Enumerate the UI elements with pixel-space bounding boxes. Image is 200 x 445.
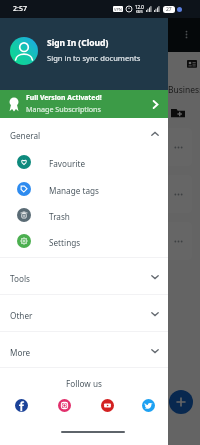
button[interactable]: Full Version Activated! xyxy=(0,90,168,118)
button[interactable]: Trash xyxy=(0,202,168,228)
staticText: VPN xyxy=(114,7,122,12)
button[interactable]: Facebook xyxy=(15,399,28,412)
staticText: General xyxy=(10,130,41,141)
staticText: KB/S xyxy=(136,10,143,14)
staticText: Settings xyxy=(49,237,81,248)
button[interactable]: Sign In (Cloud) xyxy=(0,18,168,90)
button[interactable]: Instagram xyxy=(58,399,71,412)
button[interactable]: More xyxy=(0,332,168,369)
staticText: Other xyxy=(10,310,33,321)
staticText: Follow us xyxy=(0,378,168,389)
staticText: 27 xyxy=(166,6,172,13)
button[interactable]: General xyxy=(0,118,168,149)
staticText: More xyxy=(10,347,31,358)
button[interactable]: Other xyxy=(0,295,168,332)
staticText: Tools xyxy=(10,273,30,284)
button[interactable]: Manage tags xyxy=(0,176,168,202)
staticText: Full Version Activated! xyxy=(26,93,102,102)
staticText: 2:57 xyxy=(13,4,27,14)
button[interactable]: Favourite xyxy=(0,149,168,175)
button[interactable]: Add xyxy=(169,390,193,414)
staticText: Business Ca xyxy=(168,84,200,96)
staticText: Favourite xyxy=(49,158,86,169)
staticText: Manage Subscriptions xyxy=(26,104,101,114)
staticText: Sign in to sync documents xyxy=(47,53,141,63)
staticText: 12.0 xyxy=(135,4,144,10)
staticText: Sign In (Cloud) xyxy=(47,37,109,49)
button[interactable]: Settings xyxy=(0,228,168,254)
staticText: Manage tags xyxy=(49,185,99,196)
button[interactable]: Twitter xyxy=(142,399,155,412)
button[interactable]: YouTube xyxy=(101,399,114,412)
staticText: Trash xyxy=(49,211,70,222)
button[interactable]: Tools xyxy=(0,258,168,295)
other: More options xyxy=(182,30,191,39)
